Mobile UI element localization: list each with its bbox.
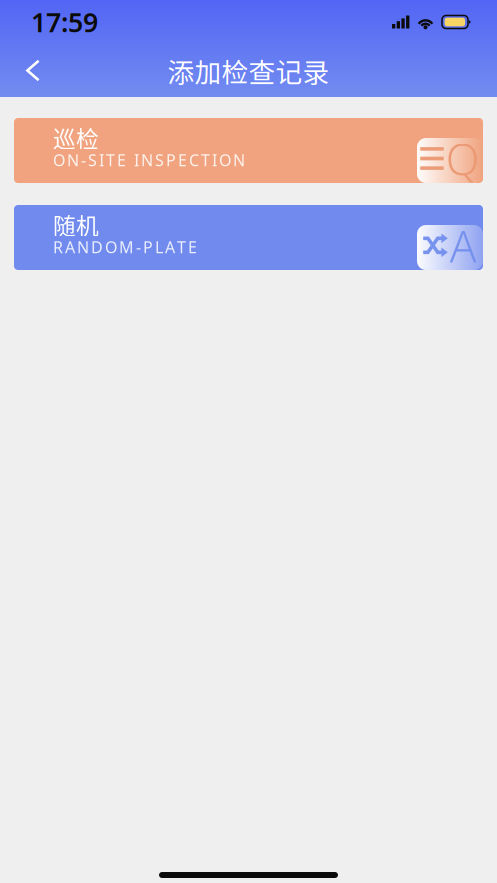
staticText: O N - S I T E I N S P E C T I O N: [53, 149, 245, 171]
button[interactable]: Back: [12, 47, 54, 93]
staticText: 17:59: [31, 4, 98, 40]
staticText: 巡检: [53, 121, 99, 154]
button[interactable]: Q: [14, 118, 483, 183]
button[interactable]: A: [14, 205, 483, 270]
staticText: 随机: [53, 208, 99, 241]
staticText: 添加检查记录: [167, 51, 329, 90]
staticText: R A N D O M - P L A T E: [53, 236, 197, 258]
staticText: A: [450, 216, 477, 275]
staticText: Q: [446, 129, 480, 188]
